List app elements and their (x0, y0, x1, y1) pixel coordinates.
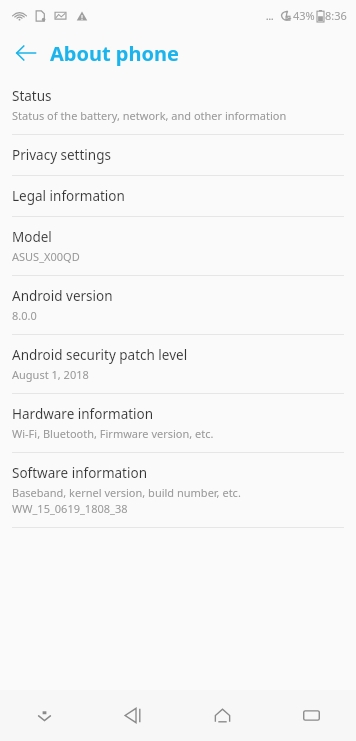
staticText: Android security patch level (12, 346, 188, 364)
staticText: 43% (293, 8, 315, 23)
button[interactable]: Status (0, 76, 356, 134)
staticText: Legal information (12, 187, 125, 205)
staticText: Hardware information (12, 405, 154, 423)
staticText: August 1, 2018 (12, 367, 89, 382)
staticText: ... (266, 10, 274, 22)
staticText: Model (12, 228, 52, 246)
button[interactable]: Legal information (0, 176, 356, 216)
button[interactable]: Android version (0, 276, 356, 334)
button[interactable]: Hardware information (0, 394, 356, 452)
button[interactable]: Privacy settings (0, 135, 356, 175)
staticText: Status (12, 87, 52, 105)
button[interactable]: Software information (0, 453, 356, 527)
staticText: About phone (50, 40, 179, 67)
staticText: Android version (12, 287, 113, 305)
button[interactable]: Model (0, 217, 356, 275)
staticText: ASUS_X00QD (12, 249, 80, 264)
staticText: Software information (12, 464, 147, 482)
staticText: WW_15_0619_1808_38 (12, 501, 128, 516)
button[interactable]: Recents (267, 690, 356, 741)
button[interactable]: Home (178, 690, 267, 741)
button[interactable]: Hide keyboard (0, 690, 89, 741)
staticText: 8:36 (325, 8, 347, 23)
staticText: Privacy settings (12, 146, 111, 164)
button[interactable]: Back (89, 690, 178, 741)
staticText: Wi-Fi, Bluetooth, Firmware version, etc. (12, 426, 214, 441)
staticText: Status of the battery, network, and othe… (12, 108, 287, 123)
button[interactable]: Back (6, 33, 46, 73)
button[interactable]: Android security patch level (0, 335, 356, 393)
staticText: 8.0.0 (12, 308, 37, 323)
staticText: Baseband, kernel version, build number, … (12, 485, 241, 500)
